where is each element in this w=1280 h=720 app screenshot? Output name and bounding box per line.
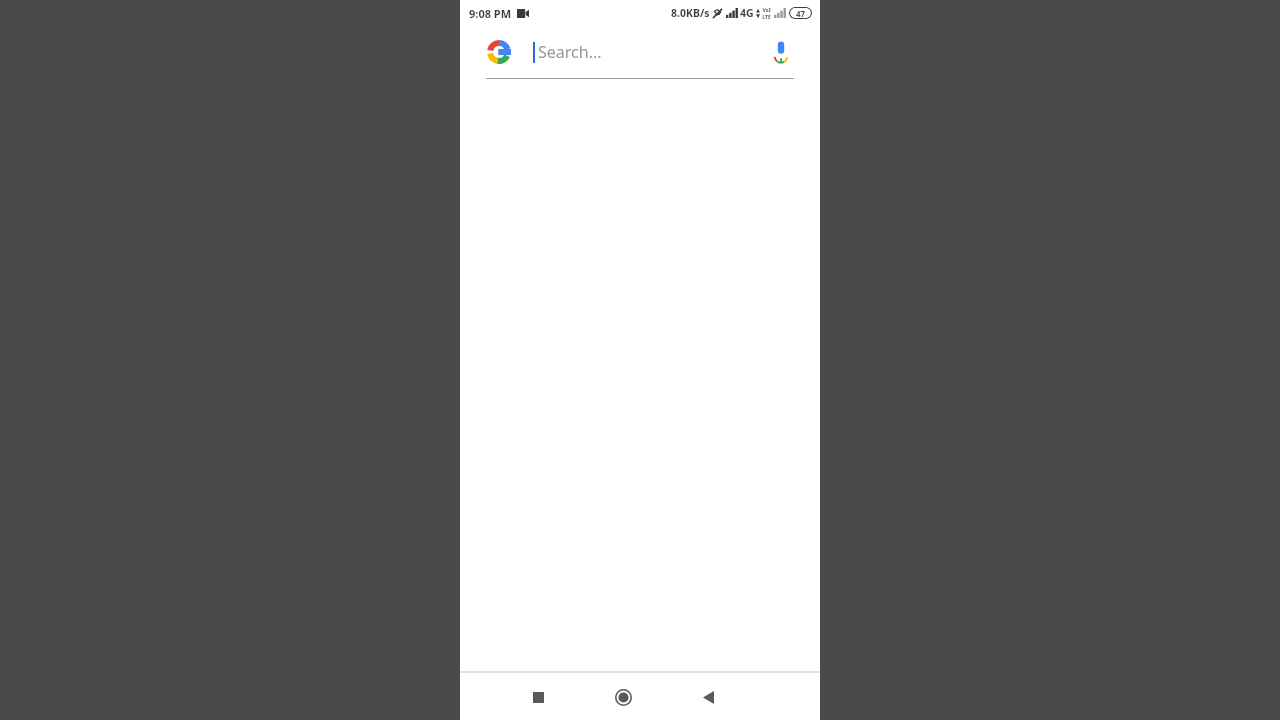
button[interactable]: Back [686,675,730,719]
staticText: 47 [796,8,806,19]
staticText: LTE [762,14,771,19]
staticText: 4G [740,6,754,20]
staticText: VoI [762,7,771,14]
staticText: 8.0KB/s [671,6,710,20]
button[interactable]: Search... [533,26,760,78]
button[interactable]: Recent apps [516,675,560,719]
staticText: 9:08 PM [469,6,512,21]
button[interactable]: Voice search [768,39,794,65]
button[interactable]: Home [601,675,645,719]
staticText: Search... [538,41,602,63]
button[interactable]: Google [486,39,512,65]
